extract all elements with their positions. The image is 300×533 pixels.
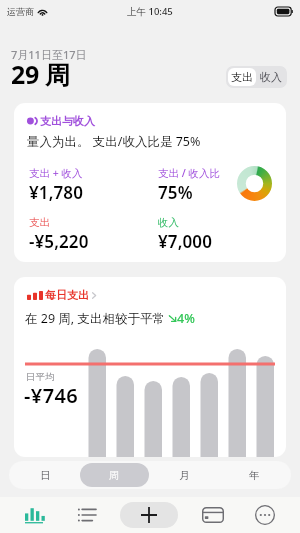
button[interactable]: Accounts	[182, 497, 243, 533]
staticText: 运营商	[7, 6, 34, 17]
button[interactable]: Transactions	[56, 497, 118, 533]
staticText: -¥5,220	[29, 230, 89, 253]
button[interactable]: 支出	[228, 68, 256, 86]
staticText: 支出 / 收入比	[158, 166, 221, 180]
button[interactable]: More	[243, 497, 286, 533]
button[interactable]: Add	[120, 502, 178, 528]
staticText: 周	[109, 469, 120, 482]
staticText: 29 周	[11, 57, 70, 91]
button[interactable]: Charts	[0, 497, 70, 533]
staticText: ¥7,000	[158, 230, 212, 253]
staticText: 支出 + 收入	[29, 166, 83, 180]
staticText: 75%	[158, 181, 193, 204]
staticText: 日	[40, 469, 51, 482]
staticText: 收入	[260, 70, 282, 84]
button[interactable]: 每日支出	[14, 277, 286, 457]
staticText: 支出	[231, 70, 253, 84]
staticText: 在 29 周, 支出相较于平常	[25, 310, 165, 327]
staticText: ¥1,780	[29, 181, 83, 204]
staticText: 每日支出	[45, 288, 89, 302]
staticText: -¥746	[24, 382, 79, 409]
button[interactable]: 日	[11, 463, 80, 487]
staticText: 7月11日至17日	[11, 47, 87, 62]
staticText: 4%	[177, 310, 195, 327]
staticText: 日平均	[26, 371, 55, 383]
button[interactable]: 收入	[256, 68, 285, 86]
staticText: 月	[179, 469, 190, 482]
button[interactable]: 周	[80, 463, 149, 487]
staticText: 年	[249, 469, 260, 482]
staticText: 上午 10:45	[127, 5, 173, 18]
button[interactable]: 月	[149, 463, 219, 487]
staticText: 量入为出。 支出/收入比是 75%	[27, 133, 201, 150]
staticText: 收入	[158, 216, 179, 229]
button[interactable]: 年	[219, 463, 289, 487]
staticText: 支出与收入	[40, 114, 95, 128]
button[interactable]: 支出与收入	[14, 103, 286, 262]
staticText: 支出	[29, 216, 50, 229]
